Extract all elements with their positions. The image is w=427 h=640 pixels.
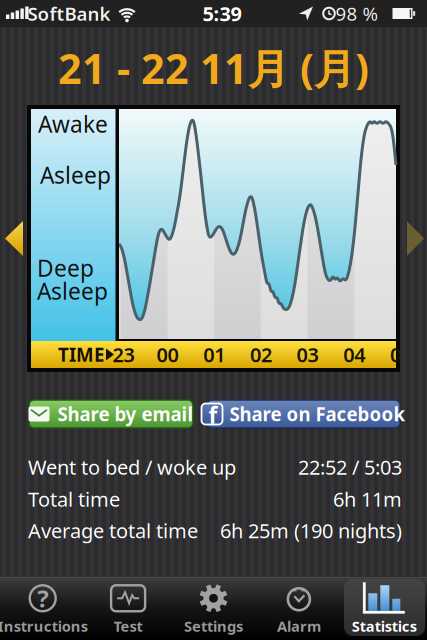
button[interactable]: Statistics [342, 580, 427, 638]
button[interactable]: Test [86, 580, 171, 638]
staticText: 98 % [335, 1, 378, 26]
staticText: Awake [38, 109, 108, 139]
button[interactable]: Previous day [5, 221, 23, 256]
staticText: Average total time [28, 517, 198, 544]
staticText: Went to bed / woke up [28, 454, 236, 480]
staticText: Settings [184, 616, 243, 636]
staticText: Share on Facebook [229, 402, 405, 426]
staticText: Test [114, 616, 143, 636]
staticText: 23 [112, 341, 134, 368]
button[interactable]: Next day [407, 221, 424, 256]
staticText: f [208, 400, 217, 430]
staticText: Asleep [37, 276, 108, 306]
staticText: Total time [28, 486, 120, 512]
staticText: Deep [37, 253, 94, 283]
button[interactable]: Settings [171, 580, 256, 638]
staticText: 6h 25m (190 nights) [220, 517, 402, 544]
staticText: Asleep [40, 160, 111, 190]
staticText: 22:52 / 5:03 [298, 454, 402, 480]
staticText: Statistics [352, 616, 417, 636]
button[interactable]: f [207, 400, 400, 428]
staticText: 01 [203, 341, 225, 368]
staticText: Instructions [0, 616, 88, 636]
button[interactable]: ? [0, 580, 85, 638]
staticText: 00 [156, 341, 178, 368]
staticText: 03 [297, 341, 319, 368]
button[interactable]: Share by email [29, 400, 193, 428]
staticText: 05 [390, 341, 412, 368]
staticText: Alarm [277, 616, 321, 636]
staticText: 6h 11m [333, 486, 402, 512]
staticText: SoftBank [27, 1, 110, 26]
staticText: Share by email [57, 402, 193, 426]
staticText: 5:39 [202, 0, 241, 27]
staticText: 21 - 22 11月 (月) [58, 41, 369, 95]
button[interactable]: Alarm [256, 580, 341, 638]
staticText: 04 [343, 341, 365, 368]
staticText: TIME [58, 342, 104, 367]
staticText: ? [37, 582, 48, 614]
staticText: 02 [250, 341, 272, 368]
